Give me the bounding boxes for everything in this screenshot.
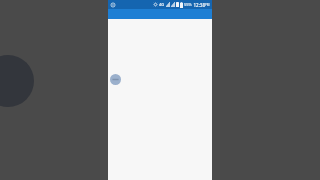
staticText: PM: [205, 3, 210, 7]
staticText: 55%: [184, 2, 192, 7]
staticText: 4G: [159, 2, 165, 7]
staticText: 12:38: [193, 2, 205, 8]
other: Notification: [110, 2, 116, 8]
button[interactable]: Loading: [110, 74, 121, 85]
button[interactable]: Recording indicator: [0, 55, 34, 107]
